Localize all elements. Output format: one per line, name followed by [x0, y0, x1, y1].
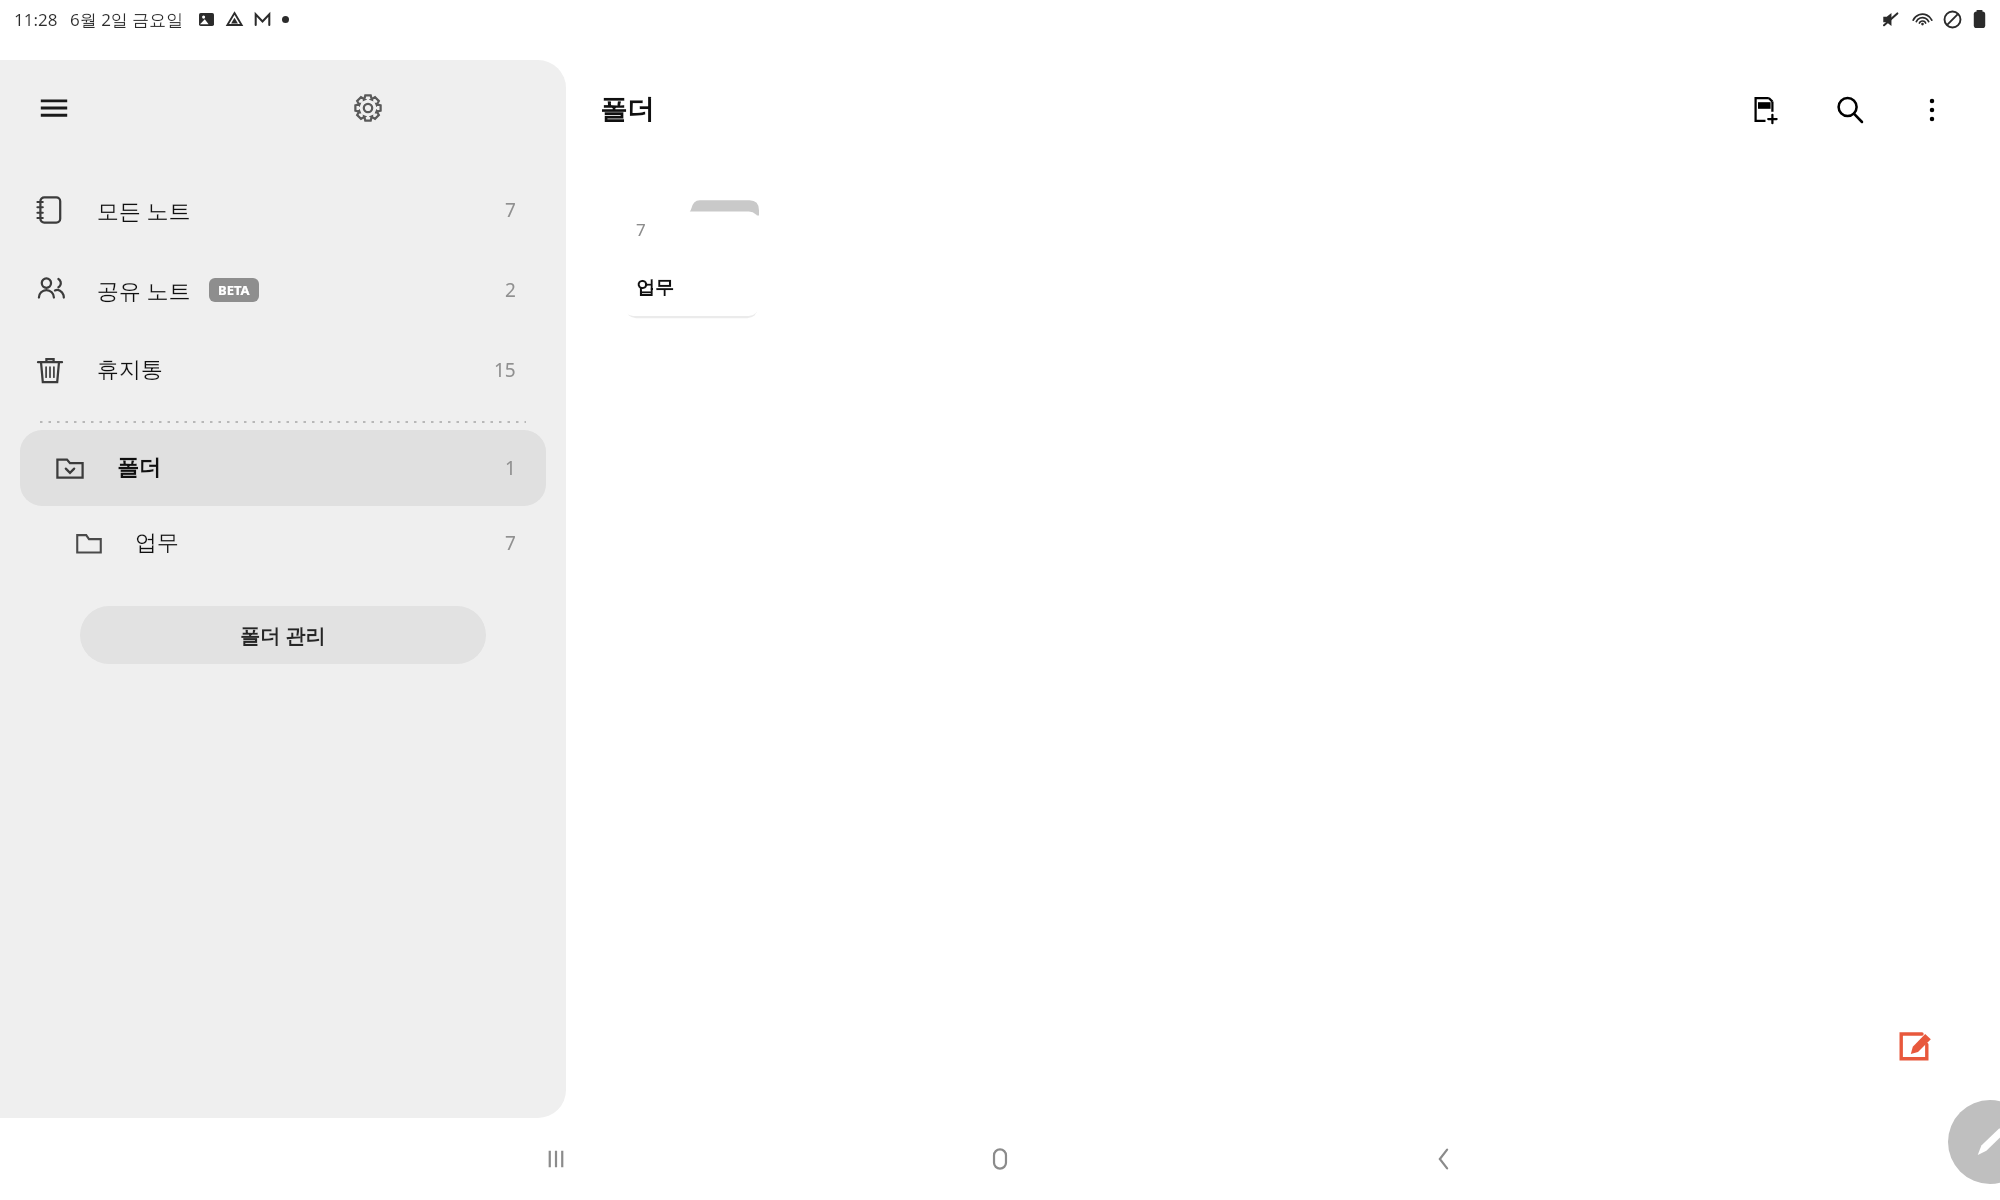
staticText: BETA — [218, 281, 250, 299]
button[interactable]: Settings — [340, 80, 396, 136]
staticText: 업무 — [135, 529, 179, 557]
button[interactable]: New note — [1868, 1000, 1960, 1092]
staticText: 7 — [505, 197, 516, 223]
button[interactable]: Pen — [1948, 1100, 2000, 1184]
button[interactable]: 폴더 — [20, 430, 546, 506]
staticText: 11:28 — [14, 8, 58, 31]
button[interactable]: Import PDF — [1736, 82, 1792, 138]
button[interactable]: Back — [1408, 1123, 1480, 1195]
button[interactable]: 7 — [623, 198, 759, 316]
staticText: 7 — [636, 218, 646, 241]
button[interactable]: Search — [1822, 82, 1878, 138]
staticText: 2 — [505, 277, 516, 303]
button[interactable]: More options — [1904, 82, 1960, 138]
staticText: 모든 노트 — [97, 195, 191, 225]
button[interactable]: 휴지통 — [0, 330, 566, 410]
button[interactable]: 공유 노트 — [0, 250, 566, 330]
staticText: 폴더 — [600, 93, 654, 127]
staticText: 공유 노트 — [97, 275, 191, 305]
staticText: 폴더 관리 — [240, 622, 326, 649]
button[interactable]: Recents — [520, 1123, 592, 1195]
button[interactable]: 모든 노트 — [0, 170, 566, 250]
button[interactable]: Home — [964, 1123, 1036, 1195]
staticText: 6월 2일 금요일 — [70, 8, 184, 31]
staticText: 업무 — [636, 276, 674, 300]
staticText: 15 — [494, 357, 516, 383]
staticText: 1 — [505, 455, 516, 481]
staticText: 휴지통 — [97, 356, 163, 384]
button[interactable]: 업무 — [0, 506, 566, 580]
staticText: 폴더 — [117, 454, 161, 482]
button[interactable]: Menu — [26, 80, 82, 136]
button[interactable]: 폴더 관리 — [80, 606, 486, 664]
staticText: 7 — [505, 530, 516, 556]
